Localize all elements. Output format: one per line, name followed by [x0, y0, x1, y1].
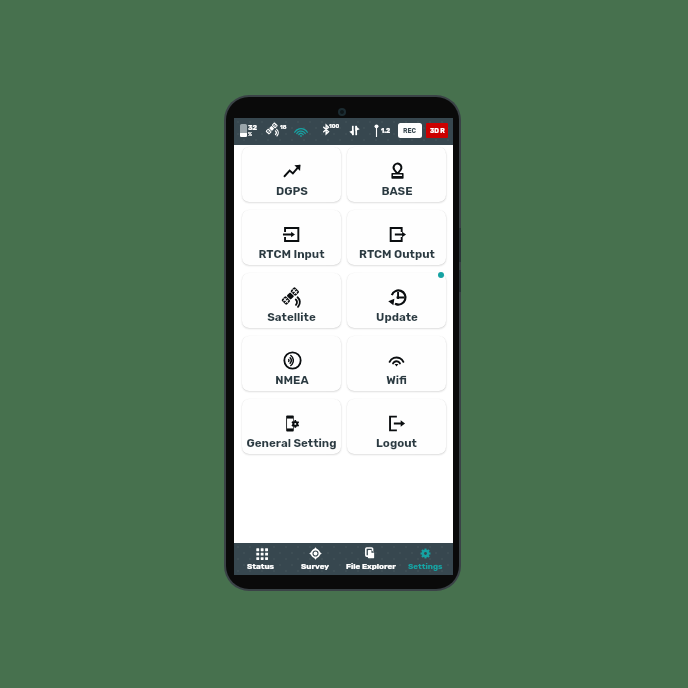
staticText: DGPS — [276, 184, 308, 198]
button[interactable]: General Setting — [242, 399, 341, 454]
button[interactable]: File Explorer — [343, 543, 398, 575]
button[interactable]: NMEA — [242, 336, 341, 391]
staticText: General Setting — [246, 436, 337, 450]
button[interactable]: Wifi — [347, 336, 446, 391]
staticText: RTCM Output — [359, 247, 435, 261]
staticText: 100 — [329, 123, 340, 130]
button[interactable]: Settings — [398, 543, 453, 575]
staticText: Wifi — [386, 373, 407, 387]
staticText: Survey — [301, 562, 330, 571]
staticText: RTCM Input — [258, 247, 325, 261]
button[interactable]: Logout — [347, 399, 446, 454]
staticText: 18 — [280, 124, 287, 131]
button[interactable]: Status — [234, 543, 288, 575]
button[interactable]: Update — [347, 273, 446, 328]
staticText: Satellite — [267, 310, 316, 324]
button[interactable]: 3D R — [426, 123, 448, 138]
staticText: 3D R — [430, 127, 445, 135]
button[interactable]: BASE — [347, 147, 446, 202]
button[interactable]: REC — [398, 123, 422, 138]
staticText: File Explorer — [346, 562, 396, 571]
staticText: BASE — [381, 184, 413, 198]
staticText: Settings — [408, 562, 443, 571]
staticText: Logout — [376, 436, 417, 450]
staticText: REC — [403, 127, 417, 135]
button[interactable]: Survey — [288, 543, 343, 575]
staticText: 1.2 — [381, 127, 391, 135]
staticText: NMEA — [275, 373, 309, 387]
button[interactable]: DGPS — [242, 147, 341, 202]
button[interactable]: Satellite — [242, 273, 341, 328]
staticText: Status — [247, 562, 275, 571]
staticText: 32 — [248, 123, 258, 131]
staticText: % — [248, 131, 253, 137]
button[interactable]: RTCM Input — [242, 210, 341, 265]
staticText: Update — [376, 310, 418, 324]
button[interactable]: RTCM Output — [347, 210, 446, 265]
